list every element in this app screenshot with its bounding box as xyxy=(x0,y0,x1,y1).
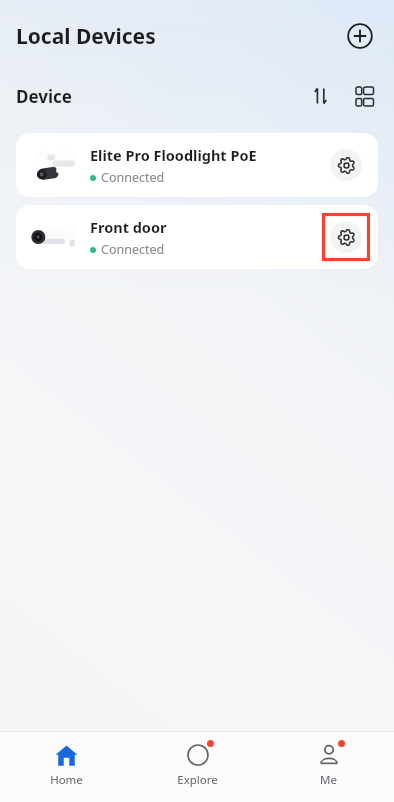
button[interactable]: Change layout xyxy=(348,79,382,113)
button[interactable]: Device settings xyxy=(330,149,362,181)
staticText: Explore xyxy=(177,772,218,788)
button[interactable]: Elite Pro Floodlight PoE xyxy=(16,133,378,197)
staticText: Connected xyxy=(101,241,165,258)
button[interactable]: Sort xyxy=(304,79,338,113)
button[interactable]: Add device xyxy=(340,16,380,56)
staticText: Elite Pro Floodlight PoE xyxy=(90,145,257,165)
staticText: Front door xyxy=(90,217,167,237)
staticText: Connected xyxy=(101,169,165,186)
staticText: Home xyxy=(50,772,83,788)
staticText: Device xyxy=(16,85,72,108)
button[interactable]: Explore xyxy=(132,732,263,802)
button[interactable]: Me xyxy=(263,732,394,802)
button[interactable]: Device settings xyxy=(330,221,362,253)
staticText: Me xyxy=(320,772,337,788)
button[interactable]: Front door xyxy=(16,205,378,269)
button[interactable]: Home xyxy=(0,732,132,802)
staticText: Local Devices xyxy=(16,22,156,51)
